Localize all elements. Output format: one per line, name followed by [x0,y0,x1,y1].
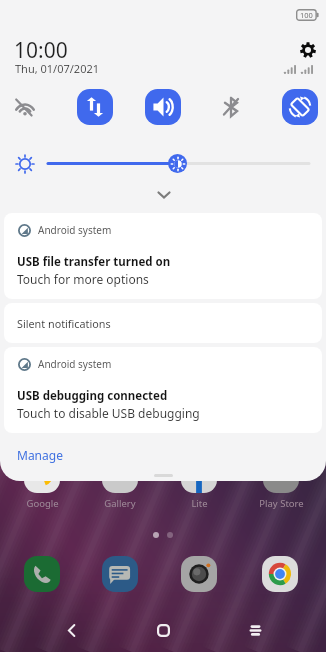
button[interactable]: Quick setting [145,89,181,125]
button[interactable]: Google [7,457,77,510]
button[interactable]: App 1 [100,554,140,594]
staticText: Android system [38,223,112,237]
staticText: 10:00 [14,36,68,65]
button[interactable]: Back [50,609,92,651]
button[interactable]: App 3 [260,554,300,594]
button[interactable]: Quick setting [213,89,249,125]
button[interactable]: Brightness [168,154,187,173]
staticText: Manage [17,447,63,463]
button[interactable]: Gallery [85,457,155,510]
staticText: USB file transfer turned on [17,254,171,270]
staticText: Google [26,497,59,510]
button[interactable]: Silent notifications [4,303,322,343]
button[interactable]: Recents [234,609,276,651]
button[interactable]: Expand quick settings [149,180,178,209]
staticText: USB debugging connected [17,388,168,404]
staticText: Android system [38,357,112,371]
staticText: Gallery [104,497,136,510]
button[interactable]: Android system [4,213,322,299]
button[interactable]: Quick setting [77,89,113,125]
button[interactable]: Settings [296,38,320,62]
button[interactable]: App 0 [22,554,62,594]
button[interactable]: Home [142,609,184,651]
staticText: Touch to disable USB debugging [17,405,200,421]
button[interactable]: Android system [4,347,322,433]
button[interactable]: Quick setting [282,89,318,125]
staticText: 100 [300,10,313,20]
button[interactable]: Lite [164,457,234,510]
button[interactable]: App 2 [179,554,219,594]
button[interactable]: Play Store [246,457,316,510]
button[interactable]: Quick setting [7,89,43,125]
button[interactable]: Manage [17,447,63,463]
staticText: Lite [191,497,208,510]
staticText: Thu, 01/07/2021 [15,61,100,76]
staticText: Play Store [259,497,304,510]
staticText: Touch for more options [17,271,149,287]
staticText: Silent notifications [17,316,111,331]
